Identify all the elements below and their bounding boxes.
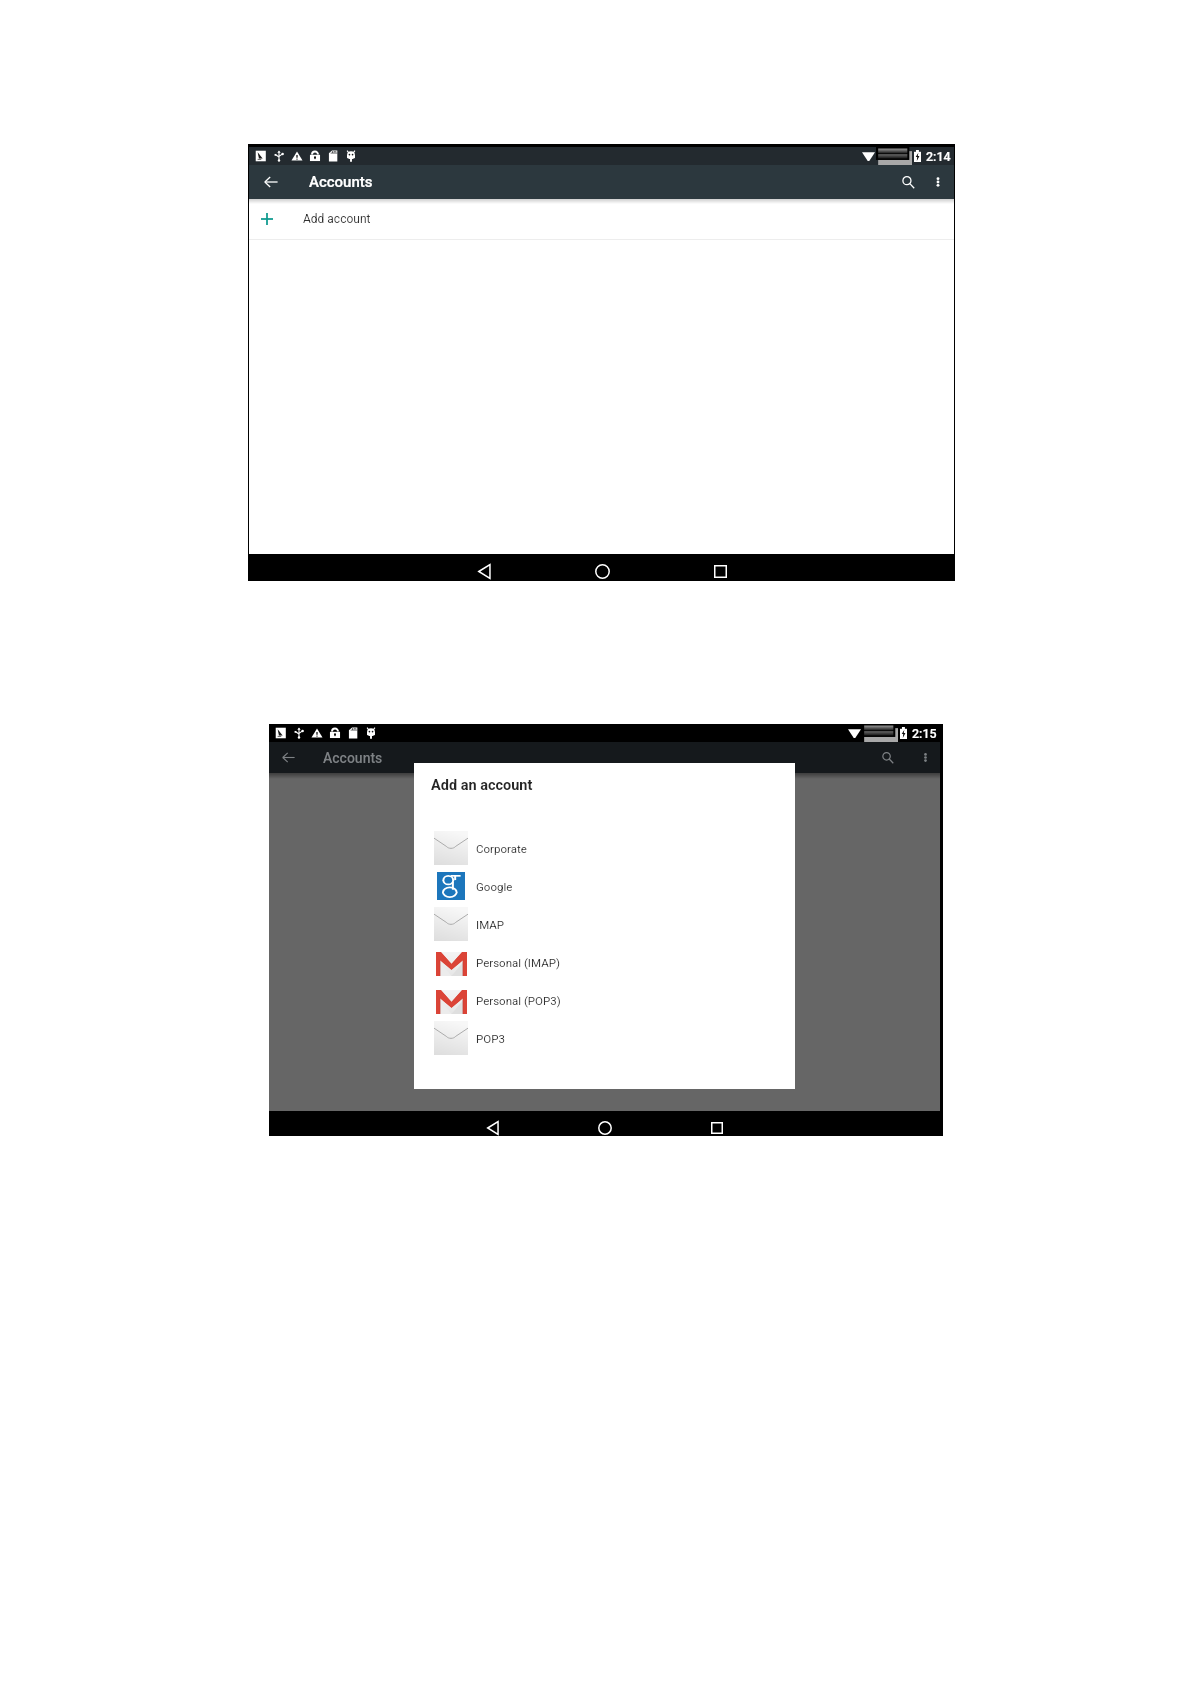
staticText: 2:14 [926,149,951,164]
staticText: Google [476,880,513,893]
button[interactable]: Home [543,554,661,581]
staticText: Accounts [323,750,383,766]
button[interactable]: More options [926,165,950,199]
button[interactable]: Search [872,742,904,773]
staticText: Add account [303,212,371,226]
button[interactable]: Corporate [414,829,795,867]
staticText: IMAP [476,918,505,931]
staticText: 2:15 [912,726,937,741]
button[interactable]: Recent apps [661,554,779,581]
button[interactable]: Navigate up [276,742,300,773]
button[interactable]: IMAP [414,905,795,943]
button[interactable]: Personal (IMAP) [414,943,795,981]
staticText: Accounts [309,173,373,191]
button[interactable]: Personal (POP3) [414,981,795,1019]
staticText: Add an account [431,777,533,794]
button[interactable]: Navigate up [258,165,284,199]
staticText: Corporate [476,842,527,855]
button[interactable]: Home [549,1111,661,1136]
button[interactable]: Back [425,554,543,581]
button[interactable]: Search [890,165,926,199]
staticText: POP3 [476,1032,505,1045]
staticText: Personal (POP3) [476,994,561,1007]
button[interactable]: Back [437,1111,549,1136]
button[interactable]: Recent apps [661,1111,773,1136]
button[interactable]: Add account [249,199,954,239]
button[interactable]: Google [414,867,795,905]
button[interactable]: More options [914,742,936,773]
staticText: Personal (IMAP) [476,956,560,969]
button[interactable]: POP3 [414,1019,795,1057]
